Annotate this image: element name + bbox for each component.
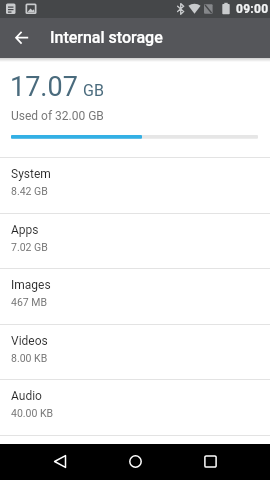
button[interactable]: Apps xyxy=(0,213,270,268)
button[interactable]: Audio xyxy=(0,379,270,435)
button[interactable]: Images xyxy=(0,268,270,324)
staticText: 40.00 KB xyxy=(11,407,54,419)
staticText: 09:00 xyxy=(236,2,269,16)
button[interactable] xyxy=(121,447,149,475)
staticText: Videos xyxy=(11,334,48,348)
staticText: Audio xyxy=(11,389,42,403)
button[interactable] xyxy=(196,447,224,475)
staticText: Apps xyxy=(11,223,39,237)
staticText: 17.07 xyxy=(10,71,78,103)
button[interactable] xyxy=(46,447,74,475)
staticText: Internal storage xyxy=(50,28,163,47)
staticText: System xyxy=(11,167,51,181)
staticText: 467 MB xyxy=(11,296,48,308)
staticText: 8.00 KB xyxy=(11,352,48,364)
staticText: Images xyxy=(11,278,51,292)
button[interactable] xyxy=(8,24,36,52)
staticText: 7.02 GB xyxy=(11,241,48,253)
staticText: 8.42 GB xyxy=(11,185,48,197)
staticText: Used of 32.00 GB xyxy=(11,109,104,123)
staticText: GB xyxy=(83,81,104,100)
button[interactable]: Videos xyxy=(0,324,270,379)
button[interactable]: System xyxy=(0,157,270,213)
